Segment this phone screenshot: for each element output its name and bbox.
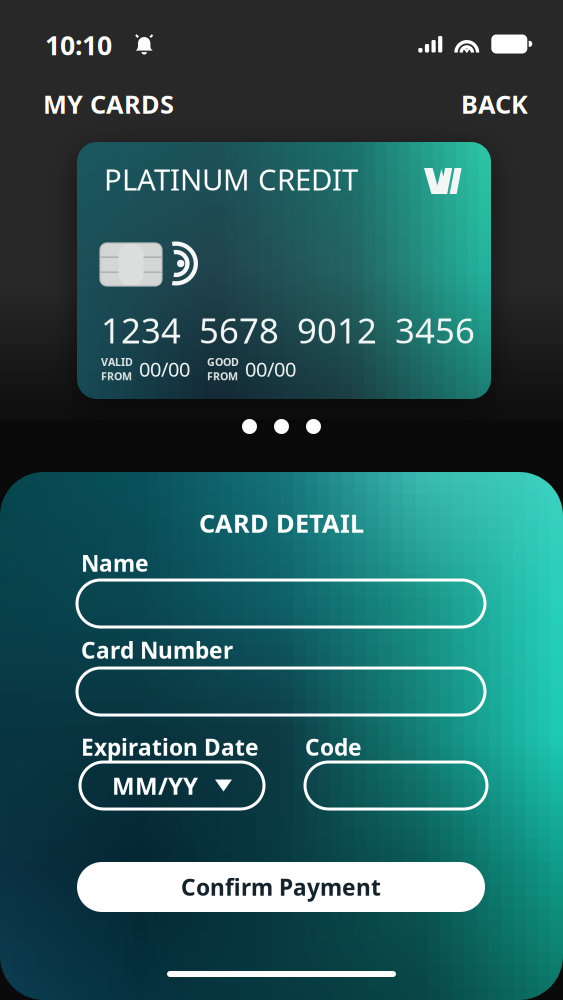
staticText: VALID [101, 355, 133, 369]
button[interactable]: Confirm Payment [77, 862, 485, 912]
button[interactable]: BACK [330, 91, 528, 117]
staticText: Name [81, 548, 149, 578]
button[interactable]: MY CARDS [43, 91, 243, 117]
button[interactable]: Card Number [77, 668, 485, 715]
button[interactable]: Code [305, 762, 487, 809]
staticText: 00/00 [245, 356, 296, 382]
staticText: MM/YY [112, 770, 198, 801]
staticText: Expiration Date [81, 732, 259, 762]
staticText: GOOD [207, 355, 239, 369]
staticText: Code [305, 732, 362, 762]
staticText: Card Number [81, 635, 233, 665]
staticText: 1234 5678 9012 3456 [101, 307, 475, 353]
staticText: PLATINUM CREDIT [104, 159, 358, 198]
staticText: FROM [207, 369, 238, 383]
button[interactable]: Name [77, 580, 485, 627]
staticText: CARD DETAIL [199, 506, 364, 540]
staticText: 00/00 [139, 356, 190, 382]
staticText: Confirm Payment [181, 872, 381, 902]
staticText: FROM [101, 369, 132, 383]
staticText: 10:10 [45, 27, 112, 63]
button[interactable]: MM/YY [80, 762, 264, 809]
staticText: BACK [461, 87, 528, 121]
staticText: MY CARDS [43, 87, 174, 121]
